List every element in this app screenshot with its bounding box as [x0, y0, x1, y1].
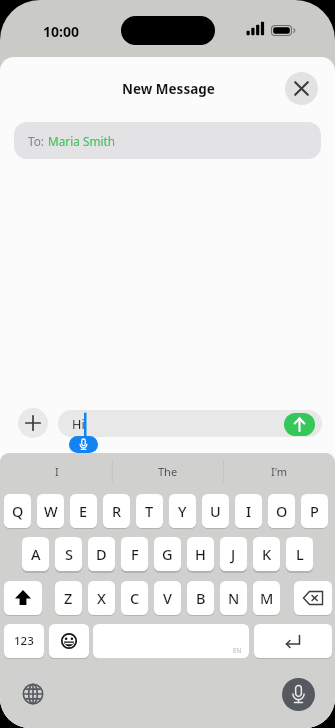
staticText: New Message	[122, 80, 215, 98]
staticText: C	[130, 588, 140, 608]
staticText: O	[276, 501, 288, 521]
staticText: Z	[64, 588, 73, 608]
staticText: J	[231, 544, 236, 564]
staticText: H	[195, 544, 206, 564]
button[interactable]: P	[301, 494, 328, 528]
staticText: X	[97, 588, 106, 608]
staticText: E	[79, 501, 88, 521]
button[interactable]: J	[220, 537, 247, 571]
staticText: To:	[28, 133, 48, 149]
button[interactable]	[282, 678, 315, 711]
button[interactable]: D	[88, 537, 115, 571]
button[interactable]: H	[187, 537, 214, 571]
staticText: Maria Smith	[48, 133, 116, 149]
staticText: W	[44, 501, 58, 521]
staticText: G	[162, 544, 173, 564]
staticText: R	[112, 501, 122, 521]
button[interactable]	[294, 581, 332, 615]
staticText: N	[228, 588, 240, 608]
staticText: T	[145, 501, 154, 521]
button[interactable]: I	[235, 494, 262, 528]
staticText: F	[131, 544, 139, 564]
staticText: V	[163, 588, 172, 608]
staticText: S	[65, 544, 73, 564]
button[interactable]: The	[138, 461, 198, 481]
staticText: 123	[14, 633, 34, 649]
staticText: 10:00	[43, 22, 79, 41]
staticText: I	[55, 464, 59, 479]
staticText: K	[262, 544, 272, 564]
staticText: M	[260, 588, 274, 608]
button[interactable]: K	[253, 537, 280, 571]
button[interactable]	[69, 436, 98, 453]
button[interactable]	[49, 624, 89, 658]
button[interactable]	[22, 683, 44, 705]
button[interactable]: T	[136, 494, 163, 528]
button[interactable]: E	[70, 494, 97, 528]
staticText: The	[158, 464, 178, 479]
button[interactable]: 123	[4, 624, 44, 658]
staticText: Y	[178, 501, 187, 521]
button[interactable]: U	[202, 494, 229, 528]
staticText: D	[96, 544, 107, 564]
button[interactable]: S	[55, 537, 82, 571]
button[interactable]: W	[37, 494, 64, 528]
button[interactable]: I'm	[249, 461, 309, 481]
button[interactable]: I	[27, 461, 87, 481]
button[interactable]: R	[103, 494, 130, 528]
button[interactable]: M	[253, 581, 280, 615]
button[interactable]: X	[88, 581, 115, 615]
button[interactable]	[4, 581, 42, 615]
button[interactable]: O	[268, 494, 295, 528]
button[interactable]: Y	[169, 494, 196, 528]
button[interactable]: F	[121, 537, 148, 571]
staticText: I'm	[271, 464, 288, 479]
staticText: EN	[233, 646, 242, 655]
staticText: P	[310, 501, 319, 521]
staticText: L	[296, 544, 304, 564]
staticText: Hi	[72, 415, 85, 432]
button[interactable]: Hi	[58, 410, 322, 437]
button[interactable]: C	[121, 581, 148, 615]
staticText: Q	[12, 501, 24, 521]
staticText: U	[210, 501, 221, 521]
button[interactable]	[254, 624, 332, 658]
button[interactable]: To:	[14, 122, 321, 159]
staticText: B	[196, 588, 206, 608]
button[interactable]	[284, 413, 315, 436]
button[interactable]: A	[22, 537, 49, 571]
button[interactable]	[285, 72, 318, 105]
button[interactable]: N	[220, 581, 247, 615]
button[interactable]: V	[154, 581, 181, 615]
button[interactable]: EN	[93, 624, 249, 658]
button[interactable]: L	[286, 537, 313, 571]
staticText: I	[246, 501, 252, 521]
button[interactable]: Z	[55, 581, 82, 615]
button[interactable]: B	[187, 581, 214, 615]
button[interactable]: Q	[4, 494, 31, 528]
button[interactable]	[18, 408, 48, 438]
button[interactable]: G	[154, 537, 181, 571]
staticText: A	[31, 544, 41, 564]
